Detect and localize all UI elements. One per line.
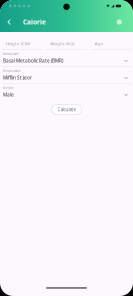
staticText: Calorie bbox=[23, 17, 46, 27]
staticText: Calculate bbox=[57, 106, 75, 112]
staticText: Activity Level bbox=[3, 52, 19, 56]
staticText: Height (CM) bbox=[6, 41, 30, 46]
button[interactable]: Formula value bbox=[0, 67, 133, 83]
button[interactable]: Account bbox=[114, 16, 125, 28]
button[interactable]: Back bbox=[4, 16, 14, 28]
staticText: Gender bbox=[3, 86, 14, 90]
button[interactable]: Calculate bbox=[51, 104, 81, 114]
staticText: Age bbox=[95, 41, 103, 46]
staticText: Weight (KG) bbox=[50, 41, 74, 46]
staticText: Mifflin St Jeor bbox=[3, 74, 32, 81]
staticText: Basal Metabolic Rate (BMR) bbox=[3, 57, 63, 64]
button[interactable]: Gender bbox=[0, 84, 133, 100]
staticText: Formula value bbox=[3, 69, 21, 73]
staticText: Male bbox=[3, 91, 14, 98]
button[interactable]: Activity Level bbox=[0, 50, 133, 66]
